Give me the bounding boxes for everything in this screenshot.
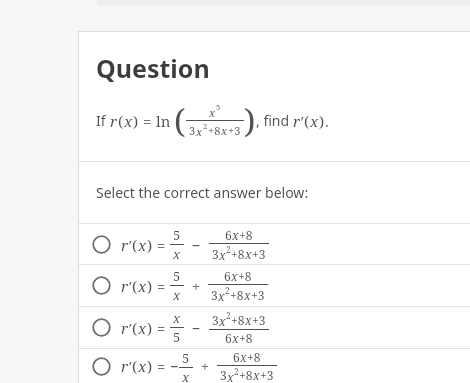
staticText: = xyxy=(153,318,170,338)
staticText: 6 xyxy=(225,227,232,243)
staticText: x xyxy=(196,124,203,139)
staticText: +8 xyxy=(230,287,244,303)
staticText: x xyxy=(227,369,234,383)
staticText: x xyxy=(218,288,225,304)
staticText: = xyxy=(153,356,170,376)
staticText: x xyxy=(124,111,133,131)
staticText: ) xyxy=(319,111,325,131)
staticText: Question xyxy=(96,51,210,85)
staticText: x xyxy=(138,318,147,338)
staticText: + xyxy=(193,356,217,376)
staticText: ( xyxy=(304,111,310,131)
staticText: 3 xyxy=(212,246,219,262)
staticText: x xyxy=(253,367,260,383)
staticText: +8 xyxy=(231,312,245,328)
staticText: +3 xyxy=(251,287,265,303)
staticText: x xyxy=(245,246,252,262)
staticText: x xyxy=(219,247,226,263)
staticText: ( xyxy=(118,111,124,131)
staticText: +8 xyxy=(238,268,252,284)
staticText: r xyxy=(121,276,129,296)
button[interactable]: Option 1 xyxy=(79,224,470,264)
staticText: ′ xyxy=(129,356,132,376)
staticText: ( xyxy=(132,276,138,296)
staticText: +8 xyxy=(247,349,261,365)
staticText: x xyxy=(310,111,319,131)
staticText: If xyxy=(96,111,110,130)
staticText: 5 xyxy=(173,226,181,244)
staticText: x xyxy=(232,227,239,243)
staticText: − xyxy=(184,318,209,338)
staticText: , find xyxy=(256,111,293,130)
staticText: = xyxy=(153,235,170,255)
staticText: + xyxy=(184,276,208,296)
staticText: ) xyxy=(147,318,153,338)
staticText: x xyxy=(221,123,228,138)
staticText: x xyxy=(173,245,181,263)
staticText: +8 xyxy=(239,330,253,346)
staticText: 5 xyxy=(182,349,190,367)
staticText: x xyxy=(219,313,226,329)
staticText: x xyxy=(231,268,238,284)
staticText: r xyxy=(121,356,129,376)
staticText: x xyxy=(182,368,190,383)
staticText: +3 xyxy=(260,367,274,383)
staticText: x xyxy=(240,349,247,365)
staticText: +8 xyxy=(208,123,221,138)
staticText: ) xyxy=(147,235,153,255)
staticText: x xyxy=(245,312,252,328)
staticText: +3 xyxy=(228,123,241,138)
staticText: 2 xyxy=(203,121,208,131)
staticText: r xyxy=(293,111,301,131)
staticText: = xyxy=(153,276,170,296)
staticText: 3 xyxy=(212,312,219,328)
staticText: − xyxy=(184,235,209,255)
staticText: = xyxy=(139,111,156,131)
staticText: Select the correct answer below: xyxy=(96,183,309,202)
staticText: 2 xyxy=(234,366,239,377)
staticText: x xyxy=(232,330,239,346)
staticText: 5 xyxy=(173,267,181,285)
button[interactable]: Option 2 xyxy=(79,265,470,306)
staticText: − xyxy=(170,356,179,376)
staticText: ) xyxy=(133,111,139,131)
staticText: x xyxy=(173,309,181,327)
staticText: ( xyxy=(132,318,138,338)
staticText: r xyxy=(121,235,129,255)
staticText: x xyxy=(173,286,181,304)
staticText: r xyxy=(121,318,129,338)
button[interactable]: Option 3 xyxy=(79,307,470,348)
staticText: 5 xyxy=(173,328,181,346)
staticText: 6 xyxy=(225,330,232,346)
staticText: 3 xyxy=(189,123,196,138)
staticText: ( xyxy=(132,235,138,255)
staticText: ′ xyxy=(129,235,132,255)
staticText: 2 xyxy=(225,285,230,296)
staticText: r xyxy=(110,111,118,131)
staticText: x xyxy=(244,287,251,303)
staticText: 2 xyxy=(226,310,231,321)
staticText: ′ xyxy=(129,318,132,338)
staticText: +3 xyxy=(252,312,266,328)
staticText: ( xyxy=(132,356,138,376)
staticText: x xyxy=(138,356,147,376)
staticText: 6 xyxy=(224,268,231,284)
staticText: 2 xyxy=(226,244,231,255)
staticText: +3 xyxy=(252,246,266,262)
staticText: 3 xyxy=(220,367,227,383)
staticText: ( xyxy=(174,98,186,143)
staticText: ln xyxy=(156,111,171,131)
staticText: +8 xyxy=(239,367,253,383)
staticText: x xyxy=(209,105,216,120)
staticText: x xyxy=(138,235,147,255)
staticText: +8 xyxy=(239,227,253,243)
staticText: 3 xyxy=(211,287,218,303)
staticText: ) xyxy=(244,98,256,143)
staticText: . xyxy=(325,111,329,131)
staticText: ) xyxy=(147,356,153,376)
button[interactable]: Option 4 xyxy=(79,349,470,383)
staticText: ) xyxy=(147,276,153,296)
staticText: x xyxy=(138,276,147,296)
staticText: 5 xyxy=(216,102,221,112)
staticText: ′ xyxy=(129,276,132,296)
